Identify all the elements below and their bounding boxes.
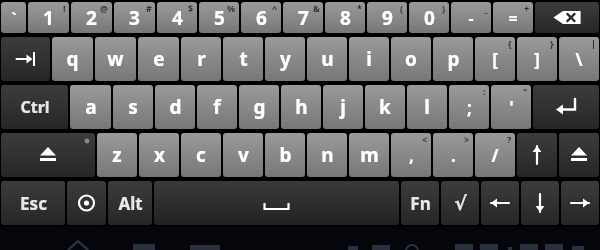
button[interactable]: r <box>181 37 221 81</box>
button[interactable]: Shift <box>559 133 599 177</box>
button[interactable]: f <box>197 85 237 129</box>
button[interactable]: Space <box>154 181 399 225</box>
staticText: _ <box>484 2 488 14</box>
staticText: j <box>340 94 346 120</box>
button[interactable]: √ <box>441 181 479 225</box>
button[interactable]: z <box>97 133 137 177</box>
button[interactable]: - <box>451 2 491 33</box>
staticText: - <box>468 7 474 29</box>
staticText: u <box>321 46 334 72</box>
button[interactable]: Left <box>481 181 519 225</box>
staticText: { <box>508 37 512 49</box>
staticText: $ <box>188 2 194 14</box>
staticText: } <box>550 37 554 49</box>
button[interactable]: / <box>475 133 515 177</box>
button[interactable]: c <box>181 133 221 177</box>
button[interactable]: ` <box>1 2 26 33</box>
button[interactable]: t <box>223 37 263 81</box>
button[interactable]: 7 <box>283 2 323 33</box>
button[interactable]: k <box>365 85 405 129</box>
button[interactable]: Tab <box>1 37 50 81</box>
button[interactable]: v <box>223 133 263 177</box>
button[interactable]: 4 <box>157 2 197 33</box>
staticText: @ <box>100 2 109 14</box>
button[interactable]: 6 <box>241 2 281 33</box>
staticText: ' <box>509 96 514 119</box>
button[interactable]: m <box>349 133 389 177</box>
button[interactable]: y <box>265 37 305 81</box>
button[interactable]: j <box>323 85 363 129</box>
staticText: w <box>107 46 124 72</box>
staticText: ( <box>400 2 404 14</box>
staticText: < <box>422 133 428 145</box>
staticText: r <box>197 46 206 72</box>
button[interactable]: 8 <box>325 2 365 33</box>
staticText: ] <box>534 48 540 71</box>
button[interactable]: Right <box>561 181 599 225</box>
staticText: b <box>279 142 292 168</box>
staticText: Ctrl <box>20 96 50 118</box>
button[interactable]: Alt <box>108 181 152 225</box>
button[interactable]: n <box>307 133 347 177</box>
button[interactable]: = <box>493 2 533 33</box>
button[interactable]: b <box>265 133 305 177</box>
button[interactable]: Fn <box>401 181 439 225</box>
staticText: k <box>379 94 391 120</box>
button[interactable]: Up <box>517 133 557 177</box>
button[interactable]: 5 <box>199 2 239 33</box>
button[interactable]: Enter <box>533 85 599 129</box>
button[interactable]: e <box>138 37 179 81</box>
button[interactable]: Settings <box>67 181 106 225</box>
staticText: ^ <box>272 2 278 14</box>
button[interactable]: Backspace <box>535 2 599 33</box>
button[interactable]: [ <box>475 37 515 81</box>
button[interactable]: ; <box>449 85 489 129</box>
button[interactable]: p <box>433 37 473 81</box>
button[interactable]: Ctrl <box>1 85 68 129</box>
staticText: i <box>366 46 372 72</box>
button[interactable]: \ <box>559 37 599 81</box>
staticText: h <box>295 94 308 120</box>
staticText: x <box>154 142 165 168</box>
button[interactable]: 3 <box>114 2 155 33</box>
button[interactable]: Shift <box>1 133 95 177</box>
button[interactable]: o <box>391 37 431 81</box>
staticText: n <box>321 142 334 168</box>
staticText: : <box>483 85 486 97</box>
button[interactable]: . <box>433 133 473 177</box>
button[interactable]: d <box>155 85 195 129</box>
staticText: % <box>227 2 236 14</box>
button[interactable]: Esc <box>1 181 65 225</box>
button[interactable]: q <box>52 37 93 81</box>
button[interactable]: u <box>307 37 347 81</box>
button[interactable]: i <box>349 37 389 81</box>
staticText: 3 <box>129 5 140 31</box>
staticText: 5 <box>214 5 225 31</box>
staticText: , <box>409 144 414 167</box>
staticText: q <box>66 46 79 72</box>
staticText: [ <box>492 48 498 71</box>
button[interactable]: 9 <box>367 2 407 33</box>
staticText: " <box>523 85 528 97</box>
button[interactable]: l <box>407 85 447 129</box>
button[interactable]: g <box>239 85 279 129</box>
button[interactable]: Down <box>521 181 559 225</box>
button[interactable]: h <box>281 85 321 129</box>
button[interactable]: a <box>70 85 111 129</box>
button[interactable]: 0 <box>409 2 449 33</box>
staticText: t <box>239 46 248 72</box>
staticText: y <box>280 46 291 72</box>
button[interactable]: s <box>113 85 153 129</box>
button[interactable]: , <box>391 133 431 177</box>
button[interactable]: 1 <box>28 2 69 33</box>
staticText: 6 <box>256 5 267 31</box>
button[interactable]: ] <box>517 37 557 81</box>
button[interactable]: x <box>139 133 179 177</box>
staticText: & <box>313 2 320 14</box>
button[interactable]: 2 <box>71 2 112 33</box>
staticText: s <box>128 94 138 120</box>
staticText: p <box>447 46 460 72</box>
button[interactable]: ' <box>491 85 531 129</box>
staticText: l <box>424 94 430 120</box>
button[interactable]: w <box>95 37 136 81</box>
